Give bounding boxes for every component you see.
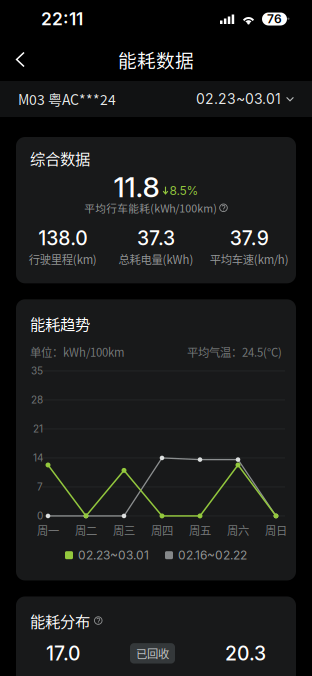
staticText: 21 <box>33 423 43 435</box>
staticText: M03 粤AC***24 <box>18 89 116 109</box>
staticText: 37.9 <box>230 226 269 250</box>
button[interactable]: Back <box>0 39 39 79</box>
staticText: 22:11 <box>41 8 83 29</box>
staticText: 行驶里程(km) <box>29 251 97 267</box>
staticText: 17.0 <box>46 642 80 665</box>
staticText: 能耗分布 <box>30 609 90 632</box>
staticText: 138.0 <box>38 226 87 250</box>
staticText: 周一 <box>37 522 59 538</box>
staticText: 0 <box>37 510 43 522</box>
staticText: 14 <box>33 452 43 464</box>
staticText: 能耗趋势 <box>30 312 90 334</box>
staticText: 02.16~02.22 <box>178 548 247 562</box>
staticText: 平均车速(km/h) <box>210 251 289 267</box>
staticText: 8.5% <box>169 183 198 198</box>
staticText: 周六 <box>227 522 249 538</box>
button[interactable]: 02.23~03.01 <box>196 82 312 115</box>
staticText: 周三 <box>113 522 135 538</box>
staticText: 平均行车能耗(kWh/100km) <box>84 200 217 215</box>
button[interactable]: M03 粤AC***24 <box>0 81 116 117</box>
staticText: 平均气温：24.5(°C) <box>187 343 282 360</box>
staticText: 02.23~03.01 <box>196 90 281 107</box>
staticText: 20.3 <box>225 642 266 665</box>
staticText: 11.8 <box>113 170 159 204</box>
staticText: 总耗电量(kWh) <box>118 251 193 267</box>
staticText: 周二 <box>75 522 97 538</box>
staticText: 02.23~03.01 <box>78 548 149 562</box>
staticText: 综合数据 <box>30 147 90 169</box>
staticText: 7 <box>37 481 43 493</box>
staticText: 周四 <box>151 522 173 538</box>
staticText: 周五 <box>189 522 211 538</box>
staticText: 37.3 <box>137 226 175 250</box>
staticText: 76 <box>267 12 282 26</box>
staticText: 单位：kWh/100km <box>30 343 124 360</box>
staticText: 周日 <box>265 522 287 538</box>
staticText: 35 <box>31 365 43 377</box>
staticText: 已回收 <box>136 645 169 662</box>
staticText: 能耗数据 <box>118 46 194 73</box>
staticText: 28 <box>31 394 43 406</box>
